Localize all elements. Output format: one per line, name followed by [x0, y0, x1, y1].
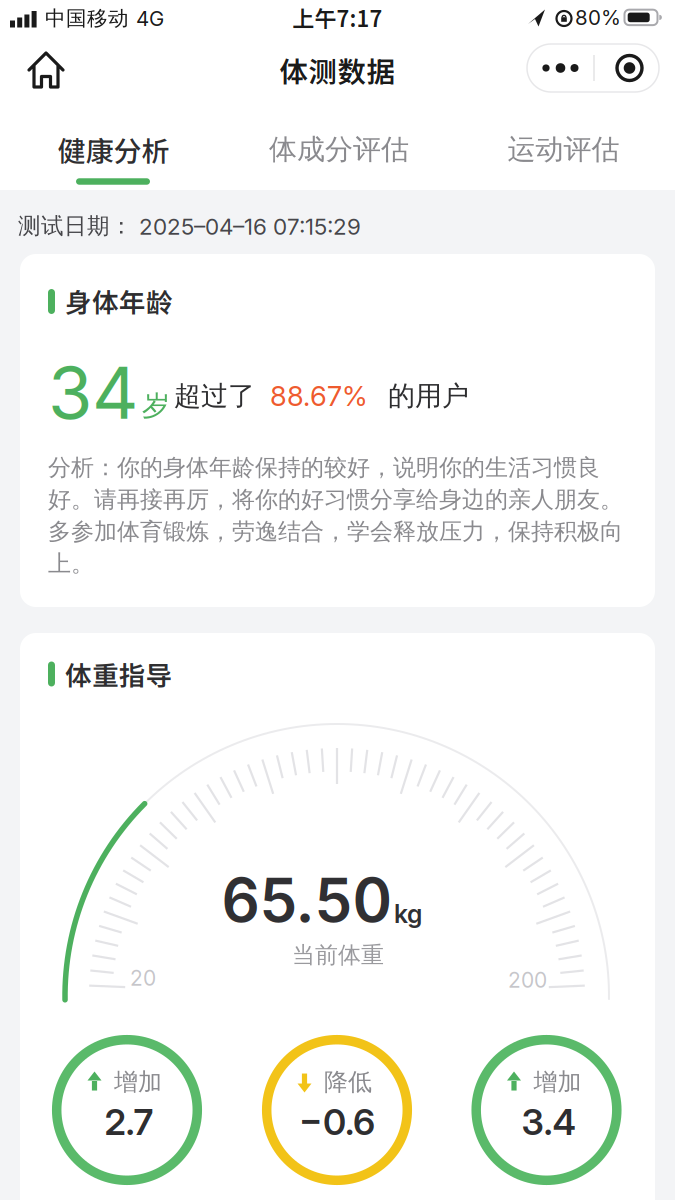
staticText: 的用户: [388, 379, 469, 413]
staticText: 体重指导: [65, 655, 173, 693]
staticText: 增加: [114, 1067, 162, 1097]
staticText: 运动评估: [507, 132, 619, 167]
staticText: 当前体重: [292, 940, 384, 969]
staticText: 88.67%: [270, 379, 368, 413]
staticText: 3.4: [521, 1100, 575, 1144]
staticText: 34: [48, 349, 139, 436]
staticText: 降低: [324, 1067, 372, 1097]
staticText: 好。请再接再厉，将你的好习惯分享给身边的亲人朋友。: [48, 485, 623, 514]
staticText: 体成分评估: [269, 132, 409, 167]
staticText: 增加: [533, 1067, 581, 1097]
staticText: 健康分析: [57, 129, 169, 170]
staticText: 20: [130, 965, 156, 991]
staticText: 200: [508, 967, 547, 993]
staticText: 测试日期： 2025–04–16 07:15:29: [18, 212, 361, 240]
staticText: 多参加体育锻炼，劳逸结合，学会释放压力，保持积极向: [48, 517, 623, 546]
staticText: 身体年龄: [65, 282, 173, 320]
staticText: −0.6: [299, 1100, 375, 1144]
staticText: 中国移动: [45, 6, 129, 31]
staticText: 上午7:17: [292, 2, 382, 33]
staticText: 超过了: [174, 379, 255, 413]
staticText: 岁: [142, 388, 170, 424]
staticText: kg: [394, 899, 422, 929]
staticText: 4G: [136, 6, 164, 31]
staticText: 2.7: [104, 1100, 153, 1144]
staticText: 体测数据: [279, 49, 395, 91]
staticText: 分析：你的身体年龄保持的较好，说明你的生活习惯良: [48, 453, 600, 482]
staticText: 65.50: [221, 864, 392, 936]
staticText: 80%: [575, 5, 621, 30]
staticText: 上。: [48, 549, 94, 578]
